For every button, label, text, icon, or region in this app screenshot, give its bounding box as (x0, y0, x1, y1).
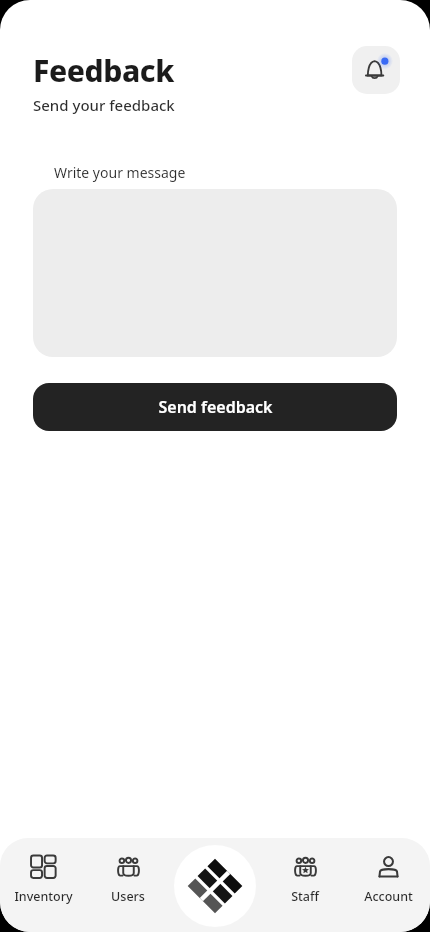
staticText: Send your feedback (33, 95, 175, 115)
button[interactable]: Send feedback (33, 383, 397, 431)
button[interactable]: Notifications (352, 46, 400, 94)
staticText: Account (364, 888, 413, 905)
staticText: Inventory (14, 888, 73, 905)
button[interactable]: Inventory (0, 848, 86, 905)
button[interactable]: Account (346, 848, 430, 905)
staticText: Write your message (54, 163, 186, 182)
button[interactable]: Home (174, 845, 256, 927)
staticText: Send feedback (158, 396, 273, 418)
button[interactable]: Staff (267, 848, 343, 905)
button[interactable]: Users (90, 848, 166, 905)
staticText: Users (111, 888, 145, 905)
staticText: Feedback (33, 50, 175, 91)
staticText: Staff (291, 888, 319, 905)
